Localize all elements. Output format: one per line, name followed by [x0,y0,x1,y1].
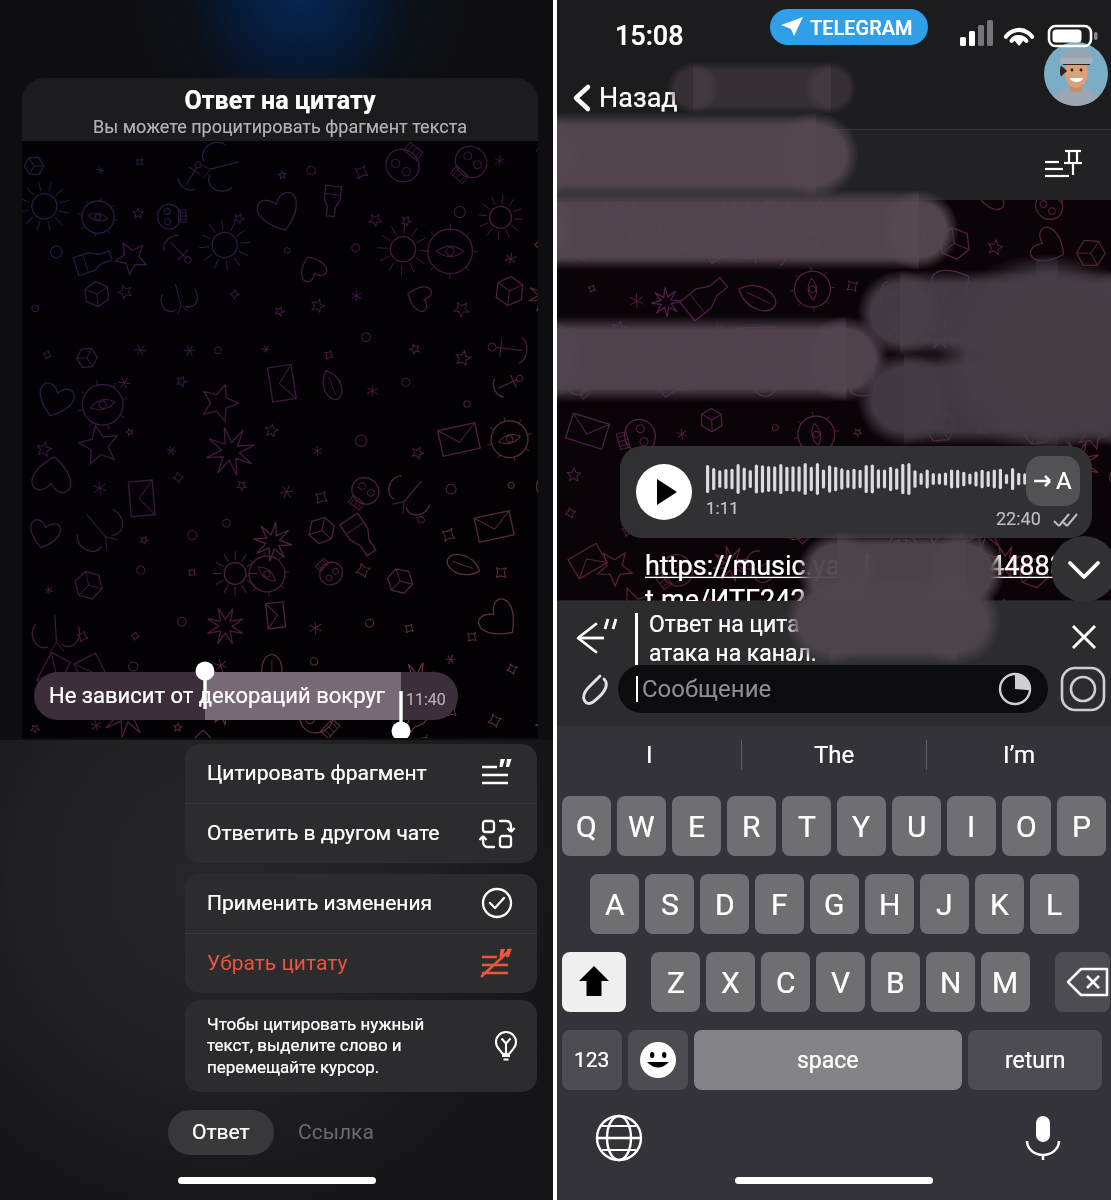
button[interactable]: H [865,874,914,934]
button[interactable]: C [761,952,810,1012]
button[interactable]: Shift [562,952,626,1012]
staticText: V [831,965,851,1000]
button[interactable]: I [947,796,996,856]
button[interactable]: Ссылка [274,1110,398,1155]
button[interactable]: Ответ [168,1110,274,1155]
staticText: Сообщение [642,675,772,703]
button[interactable]: O [1002,796,1051,856]
staticText: Q [576,809,597,844]
staticText: D [715,887,735,922]
button[interactable]: P [1057,796,1106,856]
button[interactable]: E [672,796,721,856]
button[interactable]: J [920,874,969,934]
button[interactable]: W [617,796,666,856]
button[interactable]: F [755,874,804,934]
staticText: return [1005,1047,1066,1074]
button[interactable]: Сообщение [618,665,1048,713]
staticText: P [1072,809,1091,844]
button[interactable]: https://music.yand [645,550,871,582]
staticText: TELEGRAM [810,16,913,39]
staticText: J [936,887,953,922]
staticText: N [940,965,962,1000]
staticText: Ответ [192,1120,250,1145]
button[interactable]: K [975,874,1024,934]
staticText: 1:11 [706,498,739,518]
button[interactable]: Scroll to bottom [1051,536,1111,602]
staticText: Ответ на цитату [22,86,538,115]
staticText: Ссылка [298,1120,374,1145]
button[interactable]: 123 [562,1030,622,1090]
staticText: A [605,887,625,922]
staticText: Ответить в другом чате [207,821,481,846]
button[interactable]: N [926,952,975,1012]
staticText: Назад [599,82,678,114]
button[interactable]: Transcribe [1026,456,1080,506]
button[interactable]: D [700,874,749,934]
button[interactable]: return [968,1030,1102,1090]
staticText: U [907,809,927,844]
button[interactable]: Play [636,464,692,520]
button[interactable]: Не зависит от декораций вокруг [34,672,458,720]
button[interactable]: Ответить в другом чате [185,804,537,863]
button[interactable]: U [892,796,941,856]
button[interactable]: The [742,726,926,784]
button[interactable]: t.me/ИТГ242 [645,584,806,616]
button[interactable]: Назад [565,62,678,133]
button[interactable]: I’m [927,726,1111,784]
button[interactable]: Close [1062,615,1106,659]
staticText: Y [852,809,871,844]
staticText: I [967,809,976,844]
button[interactable]: Camera [1059,665,1107,713]
staticText: G [824,887,845,922]
button[interactable]: Z [651,952,700,1012]
button[interactable]: X [706,952,755,1012]
staticText: M [992,965,1019,1000]
staticText: W [628,809,655,844]
staticText: B [886,965,905,1000]
staticText: 44883 [989,550,1065,582]
button[interactable]: B [871,952,920,1012]
button[interactable]: S [645,874,694,934]
button[interactable]: Attach [573,667,619,713]
staticText: The [814,741,855,769]
staticText: Вы можете процитировать фрагмент текста [22,116,538,137]
staticText: R [742,809,761,844]
button[interactable]: L [1030,874,1079,934]
button[interactable]: TELEGRAM [770,9,928,45]
button[interactable]: Pinned messages [1043,146,1087,190]
button[interactable]: Profile [1044,42,1108,106]
staticText: L [1046,887,1063,922]
button[interactable]: Применить изменения [185,874,537,933]
button[interactable]: Change keyboard [595,1114,643,1162]
staticText: 123 [574,1048,610,1073]
button[interactable]: I [557,726,741,784]
button[interactable]: V [816,952,865,1012]
button[interactable]: space [694,1030,962,1090]
button[interactable]: G [810,874,859,934]
button[interactable]: Backspace [1055,952,1110,1012]
staticText: O [1016,809,1037,844]
staticText: K [990,887,1009,922]
staticText: Цитировать фрагмент [207,761,481,786]
button[interactable]: A [590,874,639,934]
button[interactable]: T [782,796,831,856]
staticText: 11:40 [406,690,446,709]
button[interactable]: M [981,952,1030,1012]
button[interactable]: Q [562,796,611,856]
staticText: Применить изменения [207,891,481,916]
staticText: атака на канал. [649,640,817,667]
button[interactable]: Цитировать фрагмент [185,744,537,803]
staticText: I’m [1003,741,1036,769]
button[interactable]: R [727,796,776,856]
staticText: T [798,809,816,844]
staticText: 22:40 [996,508,1041,529]
staticText: space [797,1047,859,1074]
staticText: I [646,741,653,769]
button[interactable]: Y [837,796,886,856]
button[interactable]: Убрать цитату [185,934,537,993]
staticText: H [879,887,901,922]
button[interactable]: Emoji [628,1030,688,1090]
button[interactable]: Dictate [1019,1114,1067,1162]
staticText: Ответ на цита [649,611,800,638]
staticText: Не зависит от декораций вокруг [49,683,386,709]
